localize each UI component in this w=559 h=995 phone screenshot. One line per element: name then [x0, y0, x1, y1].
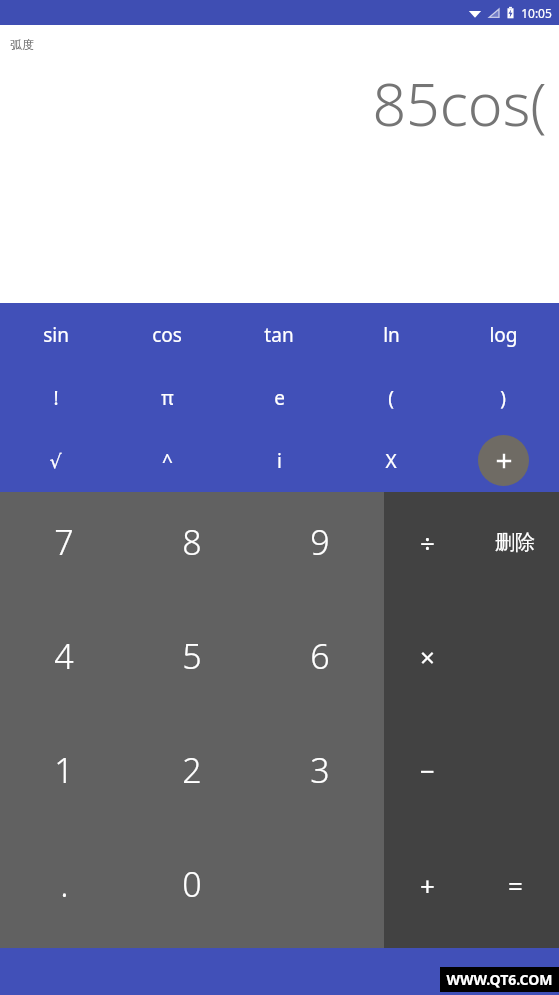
button[interactable]: log: [447, 303, 559, 366]
button[interactable]: (: [335, 366, 447, 429]
staticText: 6: [310, 633, 330, 679]
button[interactable]: Add: [478, 435, 529, 486]
staticText: .: [60, 861, 69, 907]
staticText: 10:05: [521, 5, 552, 21]
staticText: ÷: [420, 525, 435, 560]
staticText: 4: [54, 633, 74, 679]
button[interactable]: Equals: [471, 834, 559, 948]
staticText: log: [489, 322, 518, 348]
staticText: WWW.QT6.COM: [446, 970, 553, 989]
button[interactable]: ^: [111, 429, 223, 492]
staticText: (: [388, 385, 394, 411]
button[interactable]: Subtract: [384, 720, 471, 834]
button[interactable]: 9: [256, 492, 384, 606]
button[interactable]: ): [447, 366, 559, 429]
button[interactable]: Divide: [384, 492, 471, 606]
button[interactable]: ln: [335, 303, 447, 366]
button[interactable]: sin: [0, 303, 111, 366]
staticText: !: [53, 385, 59, 411]
staticText: cos: [152, 322, 182, 348]
staticText: ^: [162, 448, 173, 474]
button[interactable]: i: [223, 429, 335, 492]
staticText: 5: [182, 633, 202, 679]
staticText: 8: [182, 519, 202, 565]
staticText: −: [420, 753, 435, 788]
staticText: ×: [420, 639, 435, 674]
staticText: +: [420, 868, 435, 903]
staticText: √: [49, 450, 62, 472]
staticText: 9: [310, 519, 330, 565]
staticText: 7: [54, 519, 74, 565]
button[interactable]: 删除: [471, 492, 559, 606]
button[interactable]: 8: [128, 492, 256, 606]
button[interactable]: 5: [128, 606, 256, 720]
staticText: 3: [310, 747, 330, 793]
button[interactable]: cos: [111, 303, 223, 366]
staticText: =: [508, 868, 523, 903]
staticText: ): [500, 385, 506, 411]
button[interactable]: √: [0, 429, 111, 492]
button[interactable]: 6: [256, 606, 384, 720]
button[interactable]: 1: [0, 720, 128, 834]
staticText: ln: [383, 322, 400, 348]
button[interactable]: !: [0, 366, 111, 429]
staticText: sin: [43, 322, 69, 348]
button[interactable]: Multiply: [384, 606, 471, 720]
staticText: tan: [264, 322, 294, 348]
button[interactable]: tan: [223, 303, 335, 366]
staticText: 85cos(: [372, 63, 547, 143]
button[interactable]: 4: [0, 606, 128, 720]
staticText: X: [385, 448, 397, 474]
button[interactable]: 3: [256, 720, 384, 834]
button[interactable]: Plus: [384, 834, 471, 948]
staticText: i: [277, 448, 282, 474]
staticText: 2: [182, 747, 202, 793]
staticText: 弧度: [10, 37, 34, 52]
button[interactable]: 0: [128, 834, 256, 948]
staticText: 0: [182, 861, 202, 907]
button[interactable]: 7: [0, 492, 128, 606]
button[interactable]: X: [335, 429, 447, 492]
staticText: e: [274, 385, 285, 411]
staticText: 1: [54, 747, 74, 793]
staticText: 删除: [495, 530, 535, 555]
button[interactable]: e: [223, 366, 335, 429]
button[interactable]: 2: [128, 720, 256, 834]
button[interactable]: .: [0, 834, 128, 948]
staticText: π: [161, 385, 174, 411]
button[interactable]: π: [111, 366, 223, 429]
